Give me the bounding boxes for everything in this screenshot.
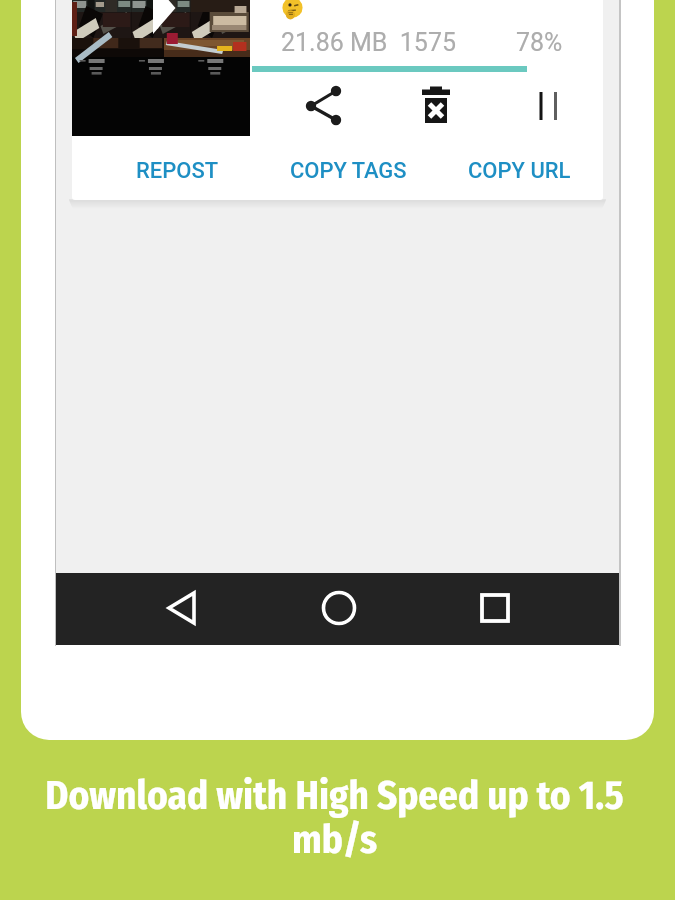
- staticText: REPOST: [136, 158, 219, 184]
- button[interactable]: Recent apps: [469, 582, 521, 634]
- button[interactable]: Pause: [520, 78, 576, 134]
- button[interactable]: Share: [294, 78, 350, 134]
- button[interactable]: COPY URL: [439, 145, 599, 197]
- button[interactable]: Delete: [408, 75, 464, 131]
- button[interactable]: COPY TAGS: [268, 145, 428, 197]
- staticText: 78%: [516, 28, 563, 57]
- staticText: COPY URL: [468, 158, 571, 184]
- staticText: Download with High Speed up to 1.5 mb/s: [22, 773, 647, 864]
- button[interactable]: Back: [156, 582, 208, 634]
- staticText: COPY TAGS: [290, 158, 407, 184]
- staticText: 21.86 MB 1575: [281, 28, 456, 57]
- button[interactable]: REPOST: [97, 145, 257, 197]
- button[interactable]: Home: [313, 582, 365, 634]
